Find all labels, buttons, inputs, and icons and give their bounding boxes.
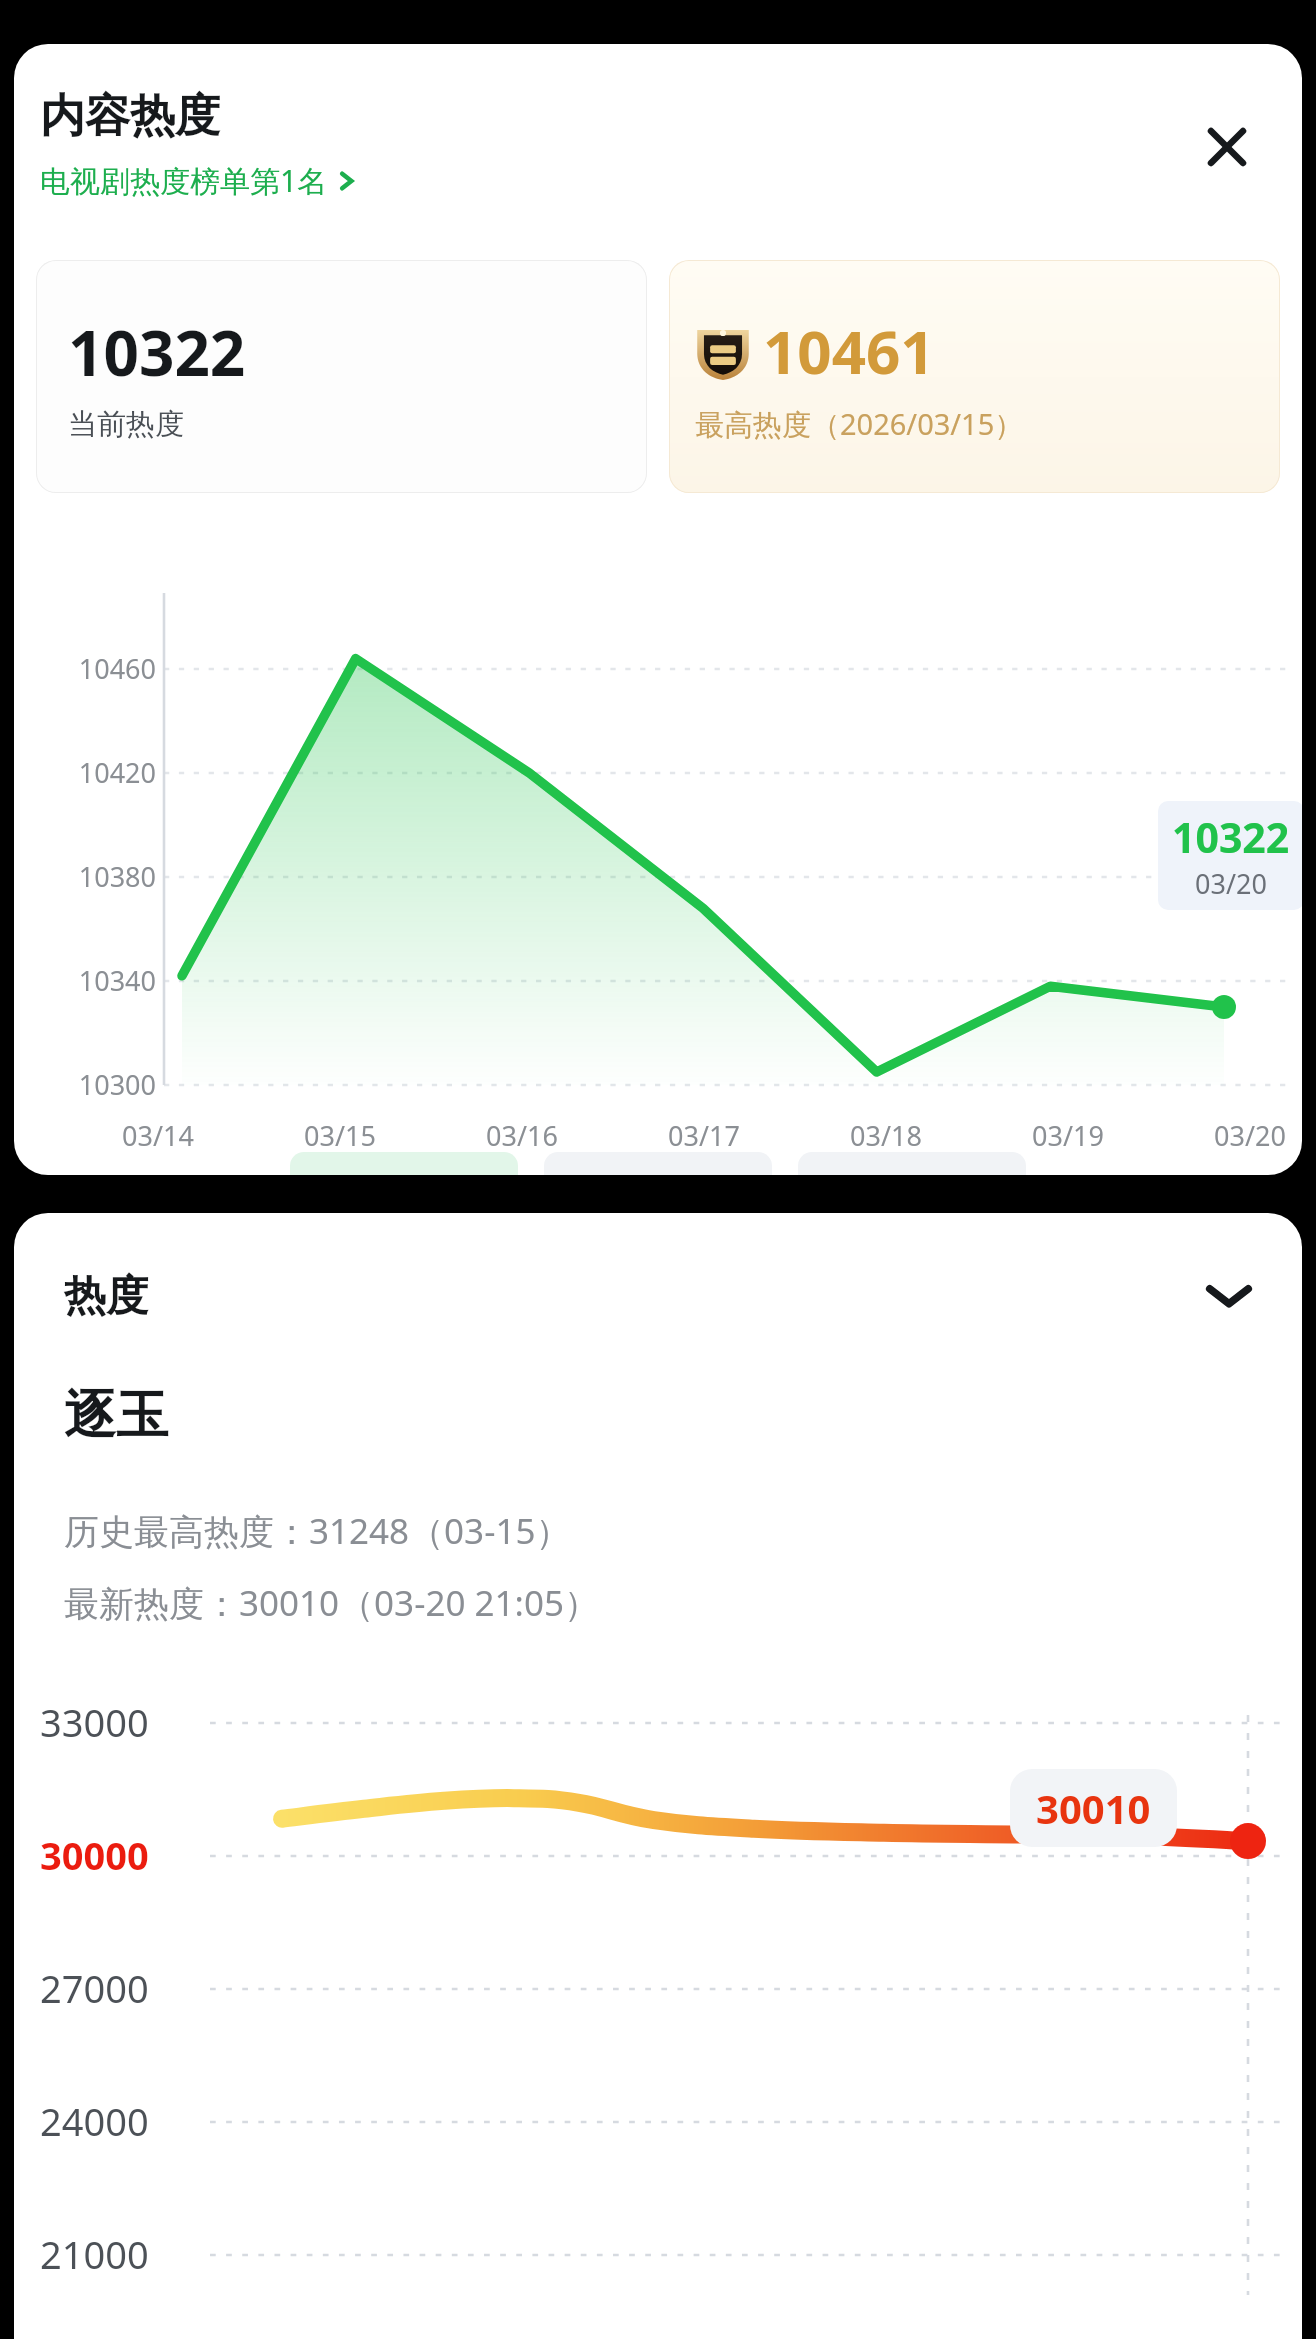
- staticText: 10300: [52, 1066, 156, 1103]
- staticText: 30010: [1036, 1781, 1151, 1835]
- staticText: 27000: [40, 1962, 200, 2014]
- staticText: 33000: [40, 1696, 200, 1748]
- button[interactable]: 10322: [1158, 801, 1302, 910]
- button[interactable]: [290, 1152, 518, 1175]
- button[interactable]: 10461: [669, 260, 1280, 493]
- staticText: 逐玉: [64, 1383, 168, 1449]
- staticText: 03/15: [304, 1117, 376, 1154]
- staticText: 10322: [1172, 809, 1290, 865]
- staticText: 03/14: [122, 1117, 194, 1154]
- staticText: 03/19: [1032, 1117, 1104, 1154]
- staticText: 21000: [40, 2228, 200, 2280]
- staticText: 最新热度：30010（03-20 21:05）: [64, 1579, 600, 1627]
- staticText: 03/20: [1195, 865, 1267, 902]
- staticText: 03/17: [668, 1117, 740, 1154]
- staticText: 10460: [52, 650, 156, 687]
- staticText: 03/16: [486, 1117, 558, 1154]
- staticText: 当前热度: [68, 406, 184, 443]
- staticText: 10322: [68, 310, 246, 394]
- button[interactable]: Collapse: [1192, 1259, 1266, 1333]
- staticText: 03/18: [850, 1117, 922, 1154]
- staticText: 最高热度（2026/03/15）: [695, 404, 1024, 444]
- staticText: 电视剧热度榜单第1名: [40, 160, 328, 201]
- staticText: 10340: [52, 962, 156, 999]
- staticText: 24000: [40, 2095, 200, 2147]
- staticText: 热度: [64, 1270, 148, 1323]
- button[interactable]: Close: [1194, 114, 1260, 180]
- button[interactable]: 10322: [36, 260, 647, 493]
- button[interactable]: 电视剧热度榜单第1名: [38, 158, 360, 203]
- staticText: 30000: [40, 1829, 200, 1881]
- staticText: 10420: [52, 754, 156, 791]
- staticText: 10461: [763, 310, 935, 392]
- staticText: 历史最高热度：31248（03-15）: [64, 1507, 571, 1555]
- button[interactable]: 30010: [1010, 1769, 1177, 1847]
- staticText: 10380: [52, 858, 156, 895]
- staticText: 03/20: [1214, 1117, 1286, 1154]
- staticText: 内容热度: [40, 88, 220, 145]
